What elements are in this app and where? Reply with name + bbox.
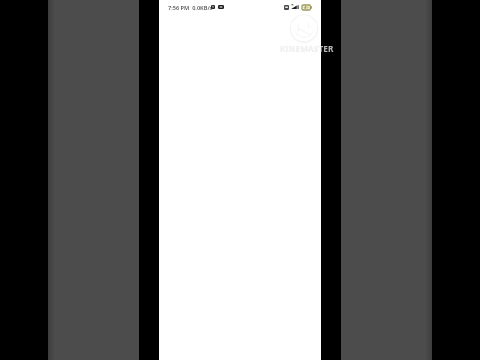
other: Mobile signal <box>291 4 299 9</box>
staticText: 7:56 PM 0.0KB/s <box>168 4 213 12</box>
other: Battery charging <box>302 5 312 10</box>
other: Location <box>211 5 215 9</box>
other: Vibrate mode <box>218 5 224 9</box>
staticText: KINEMASTER <box>280 43 350 54</box>
other: Storage <box>284 5 289 10</box>
staticText: KINEMASTER <box>280 43 350 54</box>
button[interactable]: App page <box>159 0 321 360</box>
